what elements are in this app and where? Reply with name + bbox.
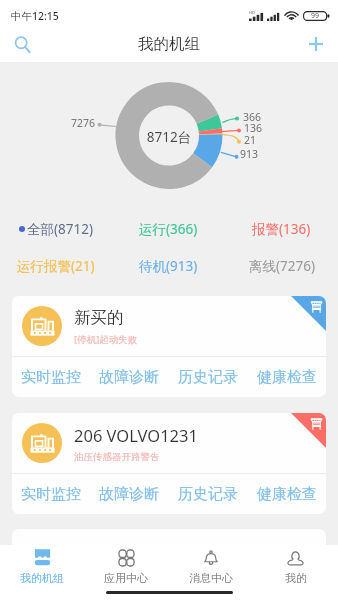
button[interactable]: 故障诊断 <box>90 474 168 514</box>
staticText: 实时监控 <box>21 485 81 504</box>
staticText: 99 <box>311 11 320 21</box>
button[interactable]: 历史记录 <box>168 357 247 397</box>
staticText: 新买的 <box>74 307 124 328</box>
button[interactable]: 新买的 <box>12 296 326 397</box>
staticText: 21 <box>244 133 257 147</box>
staticText: 136 <box>244 121 263 135</box>
button[interactable]: 我的机组 <box>0 545 84 600</box>
staticText: 我的机组 <box>20 571 64 585</box>
staticText: 我的 <box>285 571 307 585</box>
staticText: 健康检查 <box>257 368 317 387</box>
button[interactable]: 报警(136) <box>225 210 338 247</box>
staticText: 离线(7276) <box>249 257 315 275</box>
staticText: 366 <box>243 110 262 124</box>
staticText: 待机(913) <box>139 257 198 275</box>
button[interactable]: 历史记录 <box>168 474 247 514</box>
staticText: 913 <box>240 147 259 161</box>
staticText: 健康检查 <box>257 485 317 504</box>
button[interactable]: 健康检查 <box>247 357 326 397</box>
button[interactable]: 运行(366) <box>112 210 225 247</box>
staticText: 我的机组 <box>138 34 200 54</box>
button[interactable]: 离线(7276) <box>225 247 338 285</box>
staticText: 故障诊断 <box>99 368 159 387</box>
staticText: 故障诊断 <box>99 485 159 504</box>
button[interactable]: 故障诊断 <box>90 357 168 397</box>
staticText: HD <box>249 10 255 15</box>
button[interactable]: 我的 <box>253 545 338 600</box>
staticText: [停机]起动失败 <box>74 333 138 346</box>
button[interactable]: Search <box>0 26 44 62</box>
button[interactable]: 运行报警(21) <box>0 247 112 285</box>
button[interactable]: 实时监控 <box>12 474 90 514</box>
staticText: 7276 <box>71 116 96 130</box>
button[interactable]: 待机(913) <box>112 247 225 285</box>
staticText: 8712台 <box>0 128 338 146</box>
button[interactable]: 实时监控 <box>12 357 90 397</box>
staticText: 中午12:15 <box>11 9 59 23</box>
staticText: 历史记录 <box>178 485 238 504</box>
button[interactable]: 健康检查 <box>247 474 326 514</box>
staticText: 应用中心 <box>104 571 148 585</box>
staticText: 全部(8712) <box>27 220 93 238</box>
staticText: 历史记录 <box>178 368 238 387</box>
staticText: 运行(366) <box>139 220 198 238</box>
staticText: 运行报警(21) <box>17 257 95 275</box>
button[interactable]: 消息中心 <box>168 545 253 600</box>
button[interactable]: 全部(8712) <box>0 210 112 247</box>
staticText: 消息中心 <box>189 571 233 585</box>
staticText: 油压传感器开路警告 <box>74 451 160 463</box>
button[interactable]: Add <box>294 26 338 62</box>
button[interactable]: 应用中心 <box>84 545 168 600</box>
staticText: 206 VOLVO1231 <box>74 424 198 446</box>
button[interactable]: 206 VOLVO1231 <box>12 413 326 514</box>
staticText: 报警(136) <box>252 220 311 238</box>
staticText: 实时监控 <box>21 368 81 387</box>
